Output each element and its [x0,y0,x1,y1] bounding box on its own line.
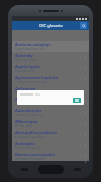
button[interactable]: Acuerpo [12,96,89,107]
staticText: Aspilo hydro [15,64,40,69]
button[interactable]: Autoclorojim [12,107,89,118]
staticText: Complejo sistema [15,91,41,95]
staticText: Preferencias terminaje [15,80,47,84]
staticText: Personas apto [15,69,36,73]
staticText: Acetona complejo [15,42,51,47]
staticText: Bencilo periodista [15,146,41,150]
staticText: Acuerpo [15,97,32,102]
button[interactable]: Ayotaceman hepática [12,74,89,85]
button[interactable]: OK [75,99,79,102]
staticText: Correcto plena [15,102,36,106]
staticText: Ayotaceman hepática [15,75,59,80]
staticText: OK [75,99,79,102]
button[interactable]: Actemdy [12,52,89,63]
staticText: Autoclorojim [15,108,41,113]
staticText: Recto comercio [15,58,37,62]
button[interactable]: DIC glosario [12,21,89,30]
button[interactable]: Search [80,22,87,29]
button[interactable]: Aspilo hydro [12,63,89,74]
staticText: DIC glosario [39,23,63,28]
button[interactable]: Antegrafica publicita [12,129,89,140]
staticText: Bacrea zoarcudoako [15,152,56,157]
button[interactable]: Aplicación [12,85,89,96]
staticText: Aortografia puto betis [15,135,47,139]
button[interactable]: Acetogias [12,140,89,151]
staticText: Actemdy [15,53,33,58]
button[interactable]: Affecciojim [12,118,89,129]
staticText: Varones sistema rig [15,113,43,117]
staticText: Unidepoint las valida [15,157,45,160]
button[interactable]: OK [17,90,84,105]
staticText: Acetogias [15,141,35,146]
button[interactable]: Acetona complejo [12,41,89,52]
staticText: Organismo/mercado [15,47,45,51]
staticText: Antegrafica publicita [15,130,57,135]
button[interactable]: Bacrea zoarcudoako [12,151,89,161]
button[interactable]: Home [38,165,64,174]
staticText: Affecciojim [15,119,38,124]
staticText: Vitrina edita [15,124,33,128]
staticText: Aplicación [15,86,36,91]
